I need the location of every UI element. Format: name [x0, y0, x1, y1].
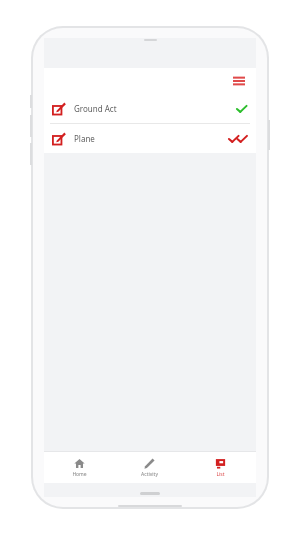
button[interactable]: Ground Act: [44, 94, 256, 123]
button[interactable]: Plane: [44, 124, 256, 153]
button[interactable]: Activity: [114, 452, 185, 483]
staticText: Plane: [74, 133, 95, 144]
button[interactable]: List: [185, 452, 256, 483]
staticText: List: [216, 471, 225, 478]
staticText: Activity: [141, 471, 158, 478]
button[interactable]: Menu: [230, 72, 248, 90]
button[interactable]: Home: [44, 452, 114, 483]
staticText: Ground Act: [74, 103, 117, 114]
staticText: Home: [72, 471, 87, 478]
